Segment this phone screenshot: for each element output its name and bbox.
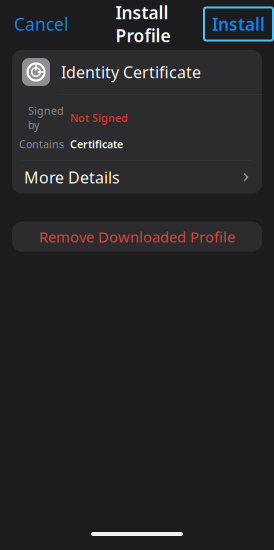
button[interactable]: Install [204,7,273,40]
button[interactable]: More Details [12,161,262,194]
button[interactable]: Remove Downloaded Profile [12,222,262,252]
staticText: Not Signed [70,111,128,125]
staticText: Signed by [28,104,64,132]
staticText: Certificate [70,137,123,151]
staticText: More Details [24,167,120,188]
staticText: Remove Downloaded Profile [39,227,235,246]
staticText: Install Profile [115,1,170,47]
staticText: Cancel [14,12,68,35]
staticText: Identity Certificate [61,61,201,83]
staticText: Install [212,12,265,35]
button[interactable]: Cancel [0,6,82,41]
staticText: Contains [19,137,64,151]
